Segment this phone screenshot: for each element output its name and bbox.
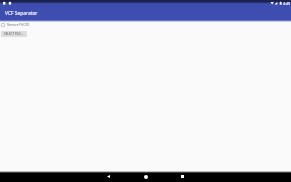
staticText: VCF Separator <box>5 10 38 17</box>
button[interactable]: Recent apps <box>164 173 201 180</box>
button[interactable]: SELECT FILE... <box>1 31 27 37</box>
staticText: SELECT FILE... <box>4 32 24 36</box>
staticText: 4:49 <box>283 1 291 6</box>
staticText: Remove PHOTO <box>7 23 30 27</box>
button[interactable]: Remove PHOTO <box>0 23 30 27</box>
button[interactable]: Home <box>127 173 164 180</box>
button[interactable]: Back <box>90 173 127 180</box>
